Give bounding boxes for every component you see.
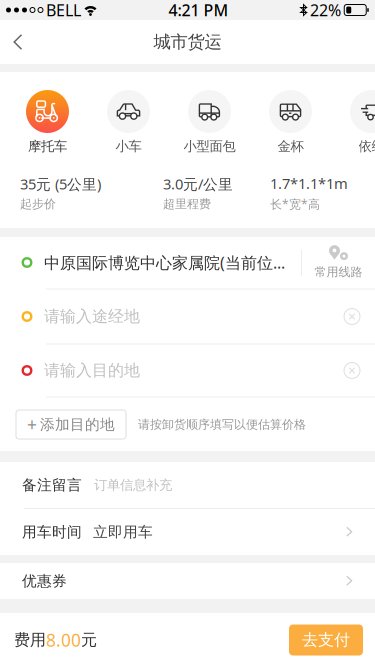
staticText: 3.0元/公里	[163, 174, 233, 194]
button[interactable]: 小车	[88, 90, 169, 154]
staticText: 用车时间	[22, 523, 82, 541]
button[interactable]: 备注留言	[0, 462, 375, 508]
staticText: 起步价	[20, 197, 56, 211]
button[interactable]: 返回	[0, 20, 36, 64]
staticText: 添加目的地	[40, 415, 115, 433]
button[interactable]: 金杯	[250, 90, 331, 154]
staticText: 元	[81, 630, 97, 650]
staticText: 中原国际博览中心家属院(当前位...	[44, 252, 285, 273]
button[interactable]: +	[16, 410, 126, 439]
staticText: 立即用车	[93, 523, 153, 541]
staticText: BELL	[46, 0, 81, 21]
staticText: 4:21 PM	[168, 0, 228, 21]
button[interactable]: 小型面包	[169, 90, 250, 154]
staticText: 金杯	[277, 138, 303, 154]
staticText: 35元 (5公里)	[20, 174, 101, 194]
staticText: +	[27, 413, 37, 436]
staticText: 超里程费	[163, 197, 211, 211]
staticText: 8.00	[46, 628, 81, 651]
staticText: 优惠券	[22, 572, 67, 590]
button[interactable]: 依维	[331, 90, 375, 154]
staticText: 请输入目的地	[44, 361, 140, 380]
staticText: 备注留言	[22, 476, 82, 494]
button[interactable]: 请输入目的地	[0, 344, 375, 396]
staticText: 长*宽*高	[270, 196, 320, 212]
staticText: 22%	[310, 0, 341, 21]
button[interactable]: 用车时间	[0, 509, 375, 555]
staticText: 小车	[115, 138, 141, 154]
staticText: 去支付	[302, 630, 350, 650]
button[interactable]: 请输入途经地	[0, 289, 375, 343]
staticText: 城市货运	[153, 31, 221, 53]
button[interactable]: 优惠券	[0, 563, 375, 599]
staticText: 订单信息补充	[94, 477, 172, 493]
button[interactable]: 常用线路	[302, 236, 375, 288]
staticText: 摩托车	[28, 138, 67, 154]
staticText: 常用线路	[314, 265, 362, 279]
staticText: 费用	[14, 630, 46, 650]
staticText: 依维	[358, 138, 375, 154]
staticText: 1.7*1.1*1m	[270, 174, 348, 193]
staticText: 请按卸货顺序填写以便估算价格	[138, 417, 306, 432]
staticText: 小型面包	[183, 138, 235, 154]
staticText: 请输入途经地	[44, 307, 140, 326]
button[interactable]: 去支付	[289, 624, 363, 655]
button[interactable]: 摩托车	[7, 90, 88, 154]
